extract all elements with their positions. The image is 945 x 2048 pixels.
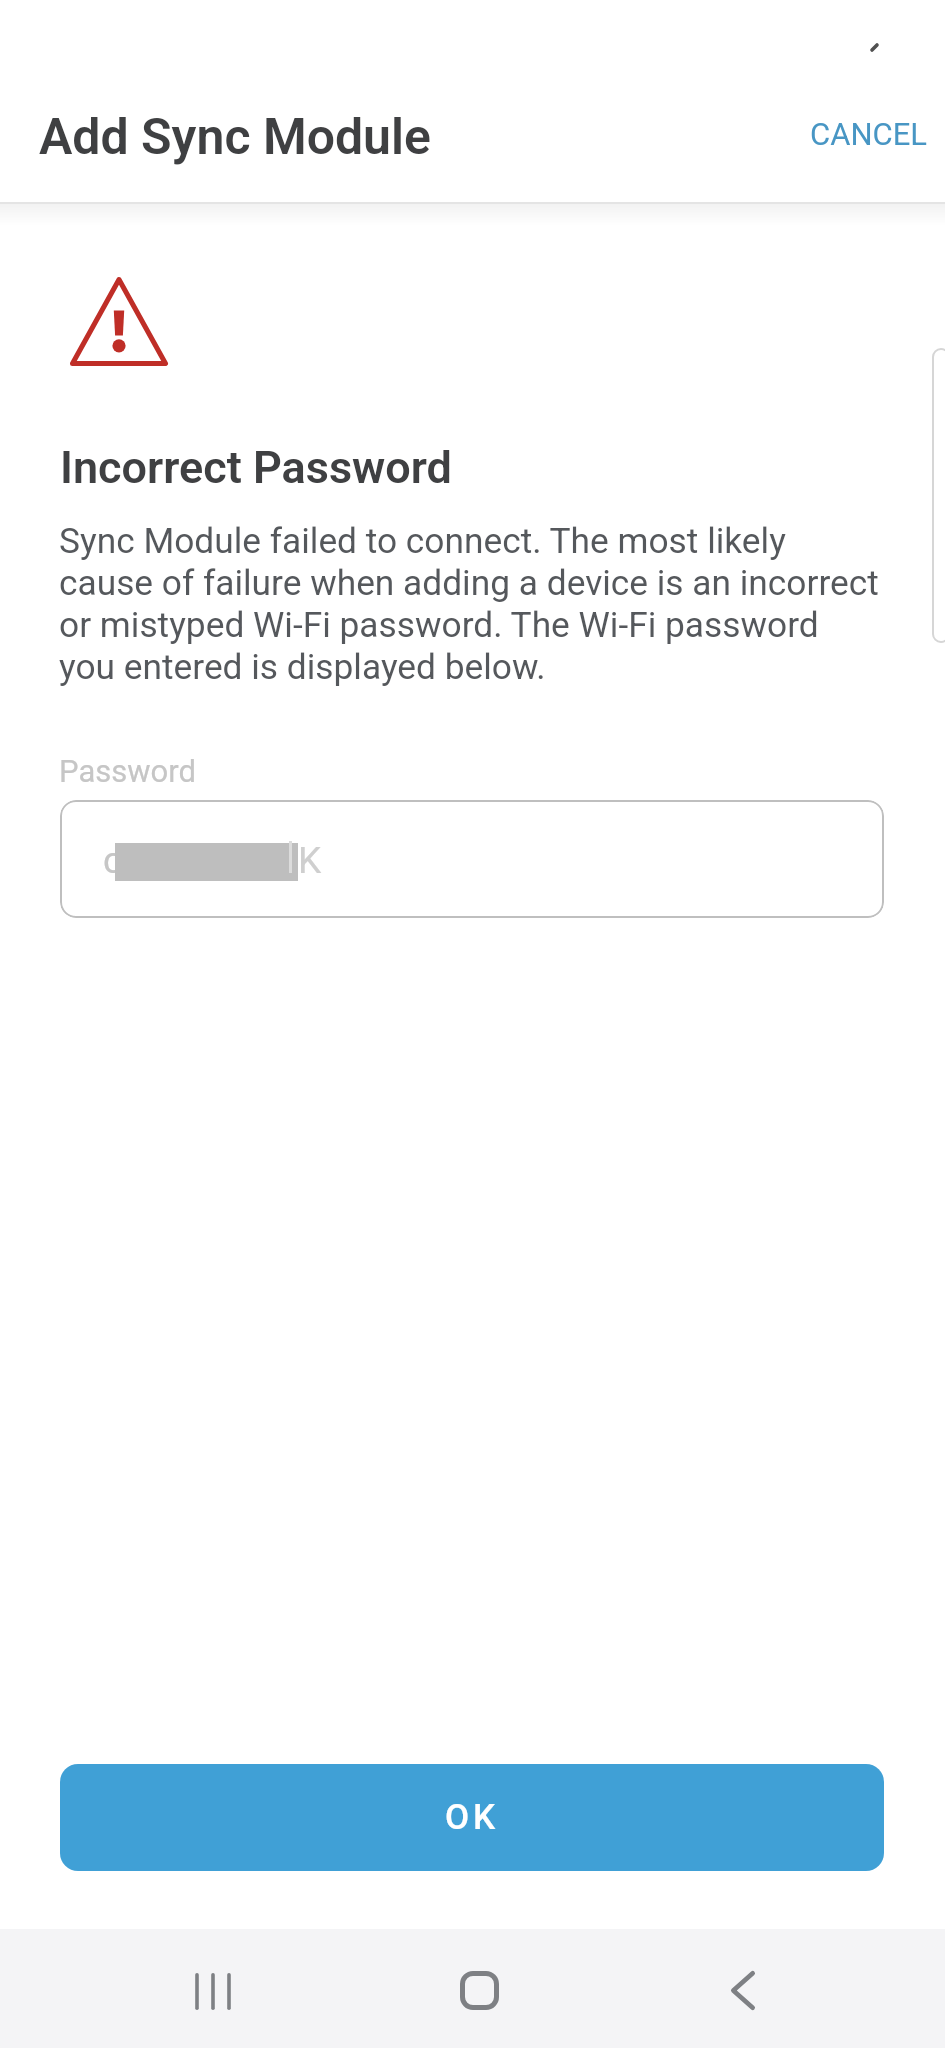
staticText: CANCEL	[810, 116, 928, 152]
staticText: Add Sync Module	[39, 108, 431, 167]
button[interactable]: Home	[418, 1932, 538, 2048]
button[interactable]: OK	[60, 1764, 884, 1871]
button[interactable]: c	[60, 800, 884, 918]
button[interactable]: Recent apps	[153, 1932, 273, 2048]
button[interactable]: Back	[682, 1932, 802, 2048]
staticText: c	[103, 839, 123, 882]
staticText: K	[298, 839, 322, 882]
staticText: Sync Module failed to connect. The most …	[59, 520, 939, 688]
staticText: Password	[59, 753, 196, 789]
button[interactable]: CANCEL	[786, 102, 945, 166]
staticText: OK	[445, 1797, 500, 1838]
staticText: Incorrect Password	[60, 441, 452, 494]
